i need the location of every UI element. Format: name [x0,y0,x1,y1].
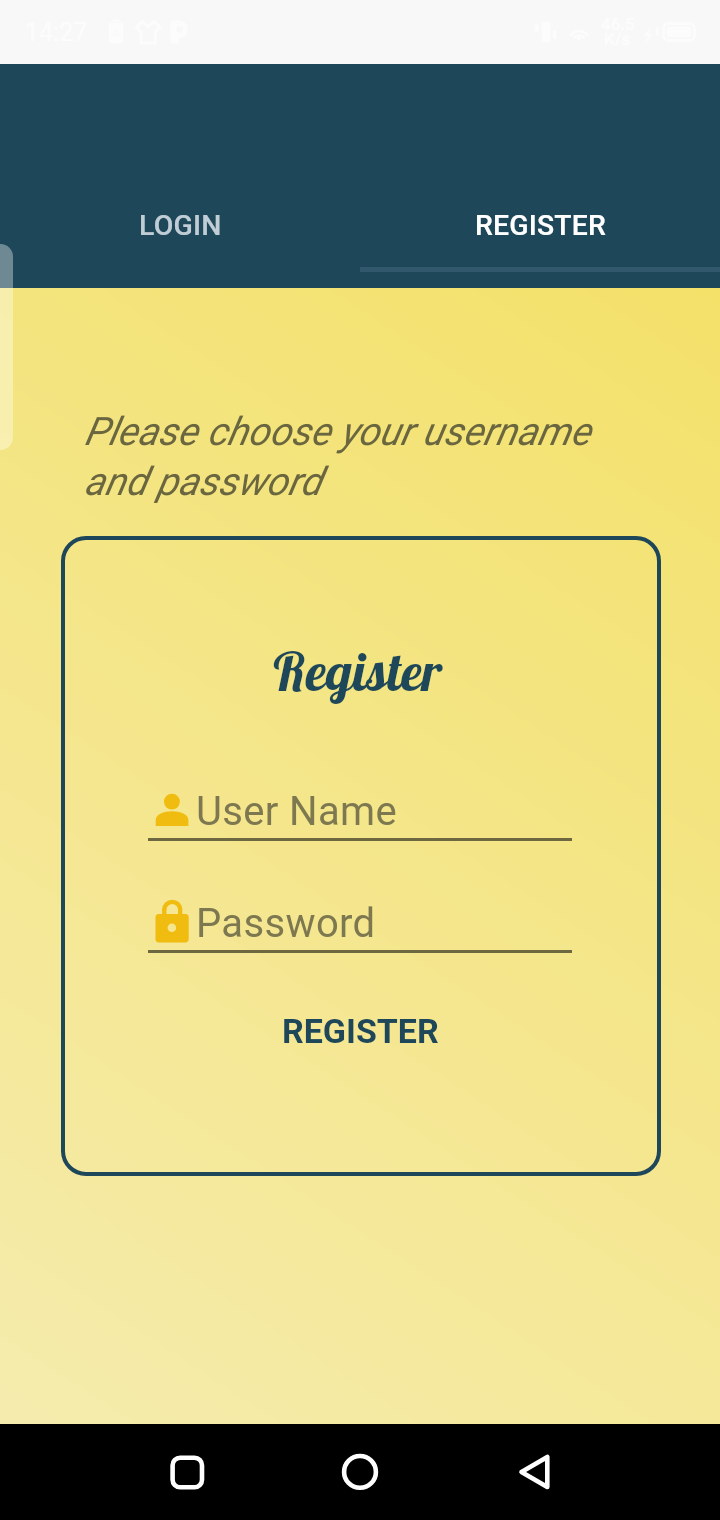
staticText: REGISTER [475,209,606,242]
button[interactable]: Password [148,900,572,954]
button[interactable]: REGISTER [360,64,720,288]
staticText: Register [56,638,656,704]
staticText: REGISTER [282,1011,439,1051]
button[interactable]: Recent apps [150,1436,222,1508]
button[interactable]: LOGIN [0,64,360,288]
staticText: User Name [196,788,398,835]
button[interactable]: REGISTER [198,999,522,1063]
button[interactable]: Back [498,1436,570,1508]
button[interactable]: User Name [148,788,572,842]
staticText: LOGIN [139,209,222,242]
button[interactable]: Home [324,1436,396,1508]
staticText: Password [196,900,376,947]
staticText: Please choose your username and password [84,409,591,504]
